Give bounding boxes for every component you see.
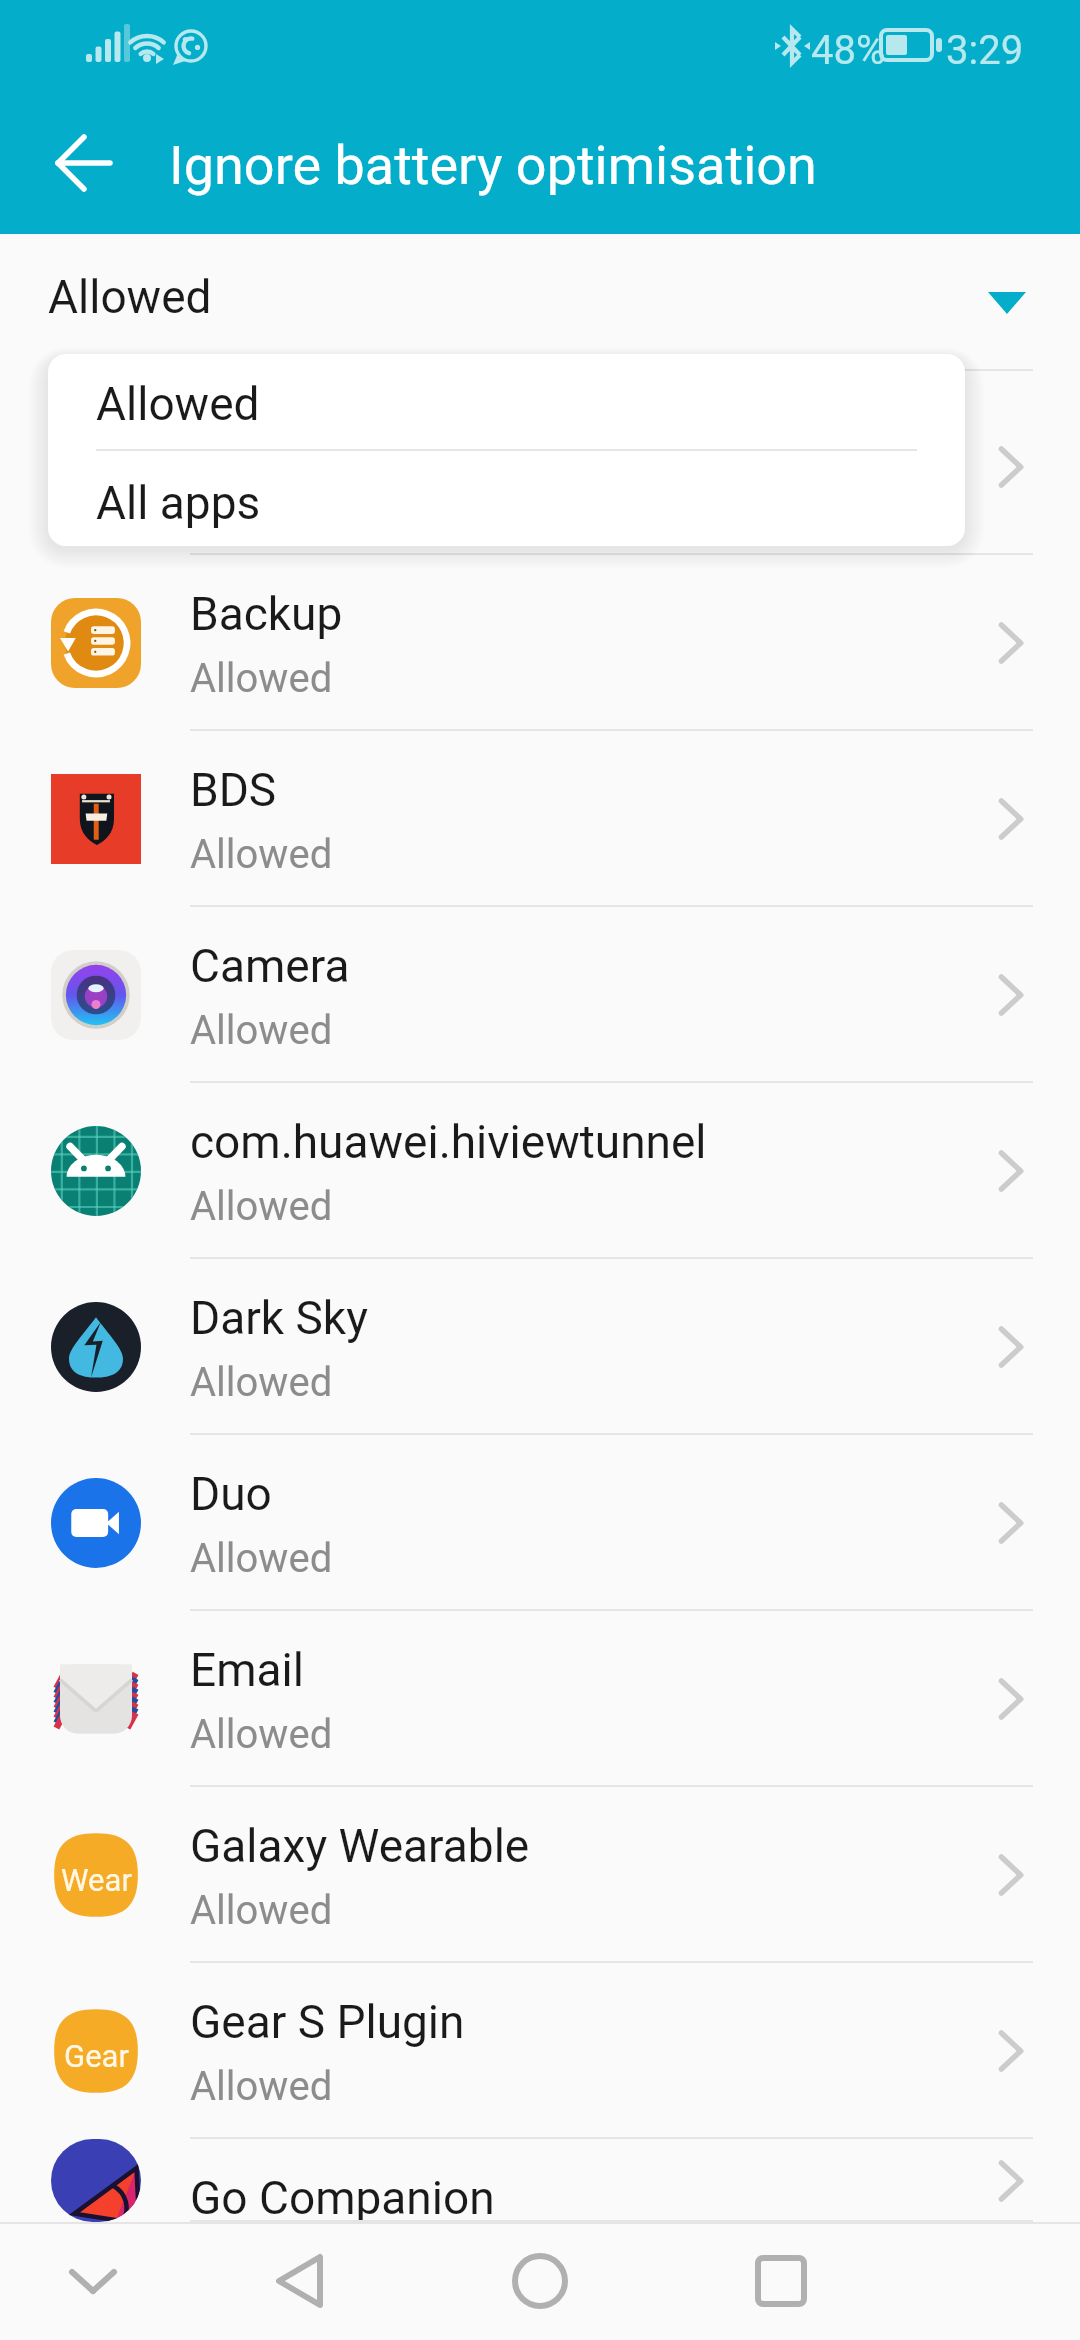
button[interactable]: Duo <box>0 1435 1080 1611</box>
button[interactable]: Back <box>34 115 130 211</box>
staticText: Duo <box>190 1467 272 1521</box>
staticText: Alarm <box>190 411 313 465</box>
staticText: Gear S Plugin <box>190 1995 465 2049</box>
staticText: Camera <box>190 939 350 993</box>
button[interactable]: Go Companion <box>0 2139 1080 2222</box>
staticText: Allowed <box>190 831 333 878</box>
button[interactable]: Back <box>240 2222 360 2340</box>
button[interactable]: BDS <box>0 731 1080 907</box>
button[interactable]: com.huawei.hiviewtunnel <box>0 1083 1080 1259</box>
button[interactable]: Gear <box>0 1963 1080 2139</box>
button[interactable]: Allowed <box>0 234 1080 379</box>
button[interactable]: Wear <box>0 1787 1080 1963</box>
button[interactable]: Email <box>0 1611 1080 1787</box>
staticText: Allowed <box>190 1711 333 1758</box>
button[interactable]: Camera <box>0 907 1080 1083</box>
staticText: Backup <box>190 587 343 641</box>
staticText: 48% <box>811 27 886 74</box>
staticText: Allowed <box>190 479 333 526</box>
button[interactable]: Home <box>480 2222 600 2340</box>
staticText: Galaxy Wearable <box>190 1819 530 1873</box>
button[interactable]: Allowed <box>48 354 965 449</box>
button[interactable]: Alarm <box>0 379 1080 555</box>
staticText: Allowed <box>190 1183 333 1230</box>
button[interactable]: All apps <box>48 451 965 546</box>
staticText: BDS <box>190 763 277 817</box>
staticText: All apps <box>96 476 261 530</box>
staticText: Gear <box>64 2038 129 2074</box>
staticText: Go Companion <box>190 2171 495 2225</box>
staticText: Allowed <box>190 2063 333 2110</box>
staticText: Ignore battery optimisation <box>169 134 817 197</box>
staticText: Allowed <box>190 1887 333 1934</box>
staticText: Dark Sky <box>190 1291 368 1345</box>
staticText: Allowed <box>190 1359 333 1406</box>
staticText: 3:29 <box>946 27 1024 74</box>
button[interactable]: Dark Sky <box>0 1259 1080 1435</box>
button[interactable]: Recents <box>721 2222 841 2340</box>
staticText: Allowed <box>190 1007 333 1054</box>
staticText: Allowed <box>96 377 260 431</box>
staticText: Allowed <box>190 1535 333 1582</box>
staticText: Wear <box>61 1862 132 1898</box>
button[interactable]: Hide keyboard <box>33 2222 153 2340</box>
button[interactable]: Backup <box>0 555 1080 731</box>
staticText: com.huawei.hiviewtunnel <box>190 1115 707 1169</box>
staticText: Allowed <box>190 2239 333 2286</box>
staticText: Email <box>190 1643 304 1697</box>
staticText: Allowed <box>48 270 212 324</box>
staticText: Allowed <box>190 655 333 702</box>
